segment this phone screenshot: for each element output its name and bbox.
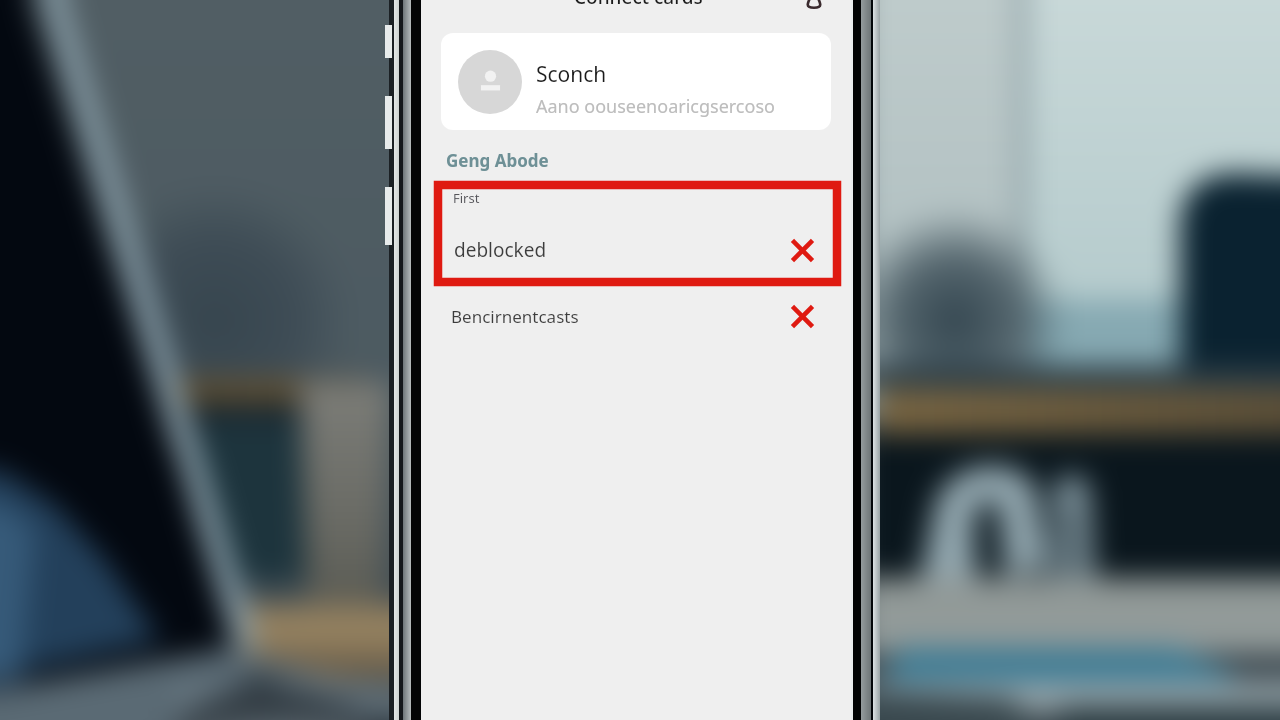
button[interactable]: Sconch (441, 33, 831, 130)
button[interactable]: Remove (785, 299, 819, 333)
staticText: deblocked (454, 237, 547, 263)
staticText: Connect cards (574, 0, 703, 10)
staticText: Sconch (536, 60, 607, 89)
staticText: Bencirnentcasts (451, 305, 579, 328)
button[interactable]: deblocked (446, 232, 836, 268)
staticText: First (453, 189, 480, 207)
staticText: Geng Abode (446, 149, 549, 172)
button[interactable]: Add contact (801, 0, 827, 12)
staticText: Aano oouseenoaricgsercoso (536, 94, 775, 119)
button[interactable]: Bencirnentcasts (446, 298, 836, 334)
button[interactable]: Remove (785, 233, 819, 267)
